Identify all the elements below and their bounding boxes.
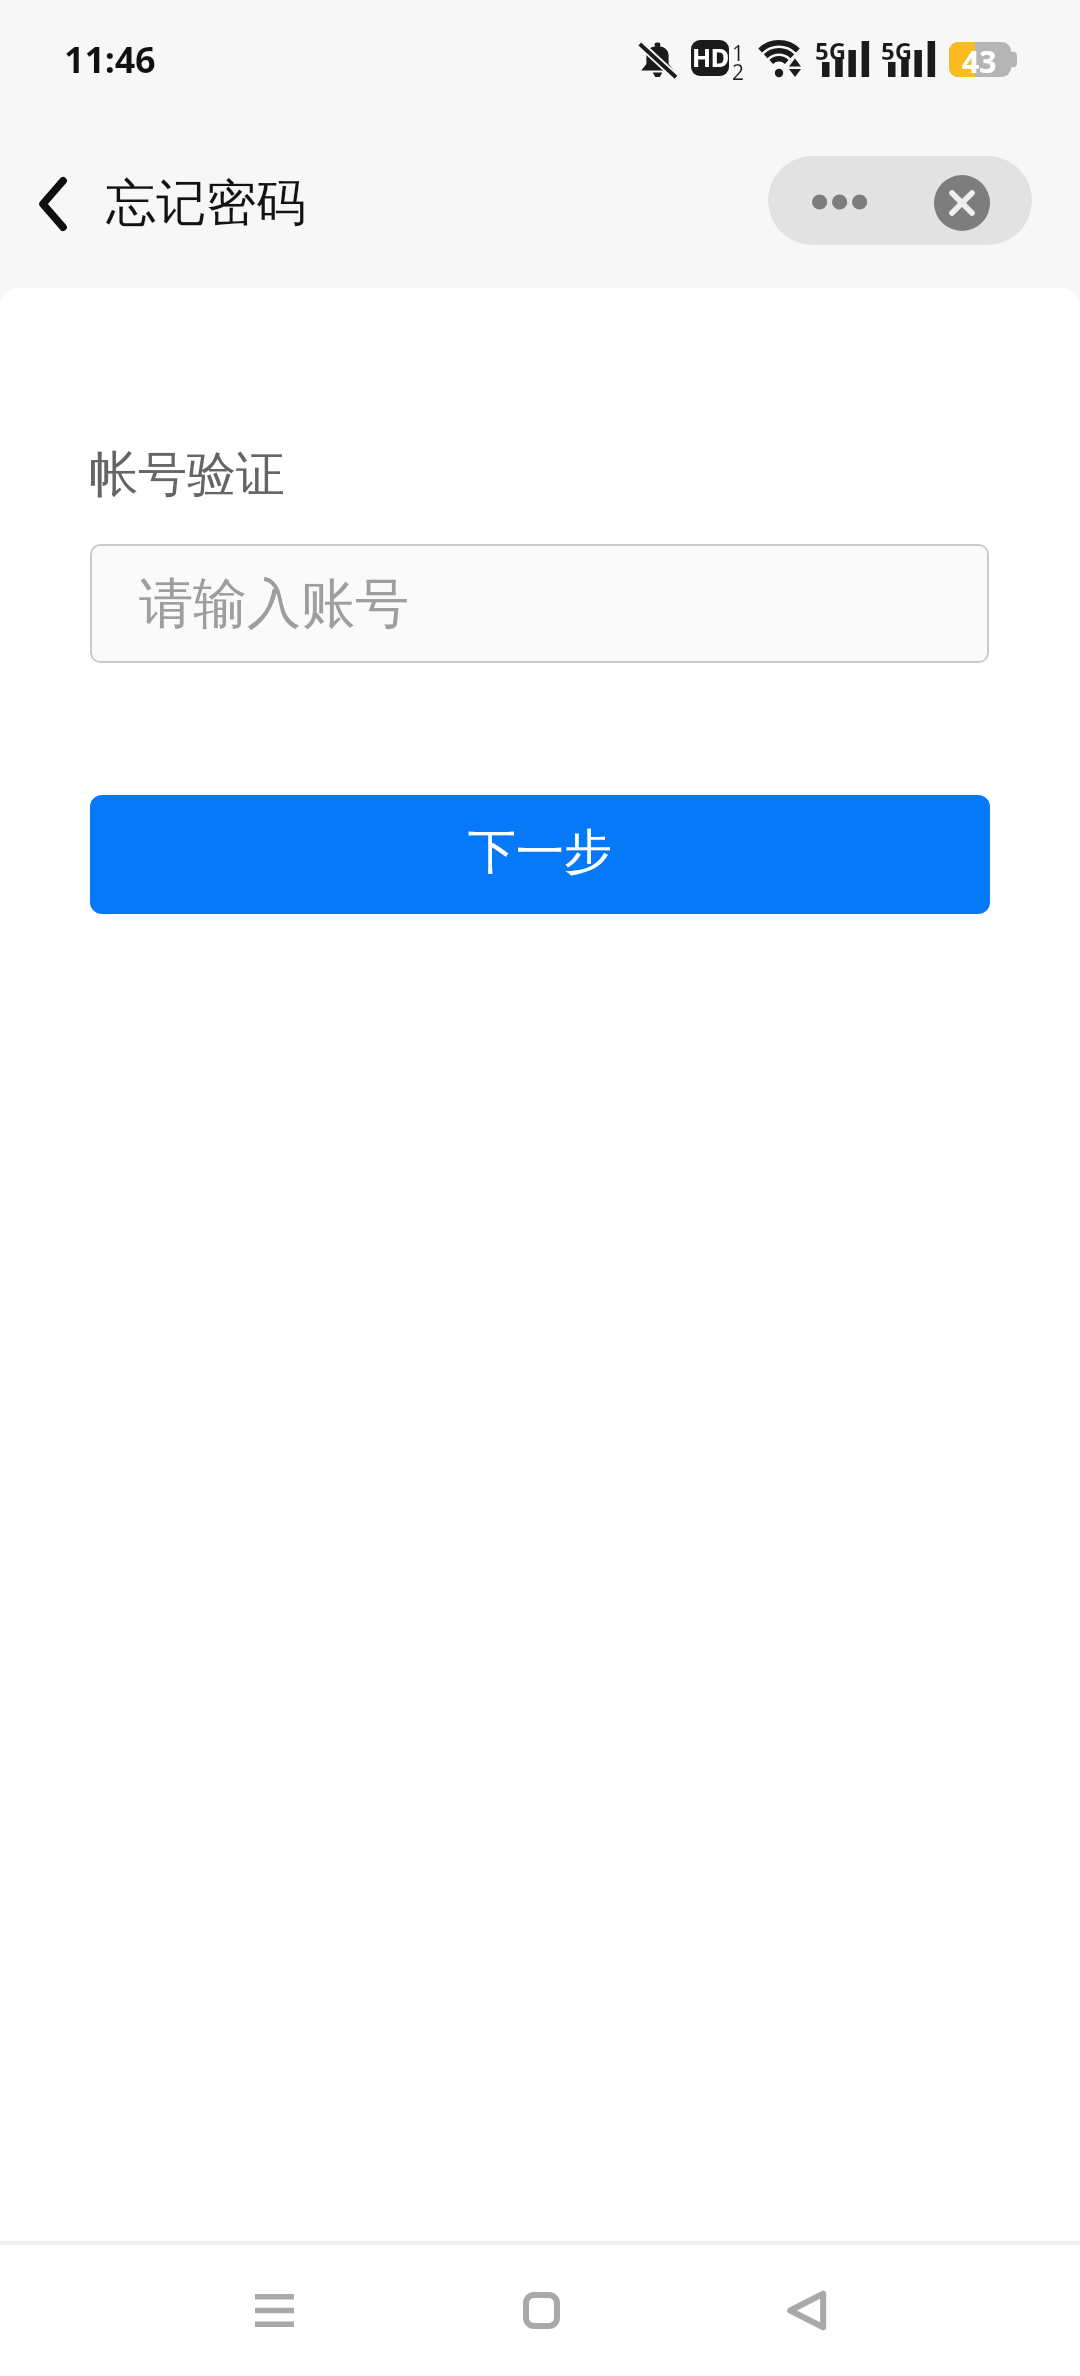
staticText: 5G <box>815 34 847 67</box>
button[interactable]: Home <box>453 2245 629 2376</box>
button[interactable]: Back <box>18 169 88 239</box>
staticText: 2 <box>732 58 745 87</box>
staticText: 下一步 <box>468 822 612 882</box>
button[interactable]: Back <box>718 2245 894 2376</box>
button[interactable]: 下一步 <box>90 795 990 914</box>
staticText: 忘记密码 <box>106 172 306 235</box>
staticText: 43 <box>962 41 997 76</box>
button[interactable]: Close <box>900 156 1032 245</box>
staticText: 帐号验证 <box>89 444 285 506</box>
button[interactable]: 请输入账号 <box>90 544 989 663</box>
staticText: HD <box>692 40 729 74</box>
button[interactable]: More options <box>768 156 900 245</box>
button[interactable]: Recent apps <box>186 2245 362 2376</box>
staticText: 11:46 <box>64 35 156 84</box>
staticText: 请输入账号 <box>139 570 409 638</box>
staticText: 5G <box>881 34 913 67</box>
staticText: 1 <box>732 39 745 68</box>
